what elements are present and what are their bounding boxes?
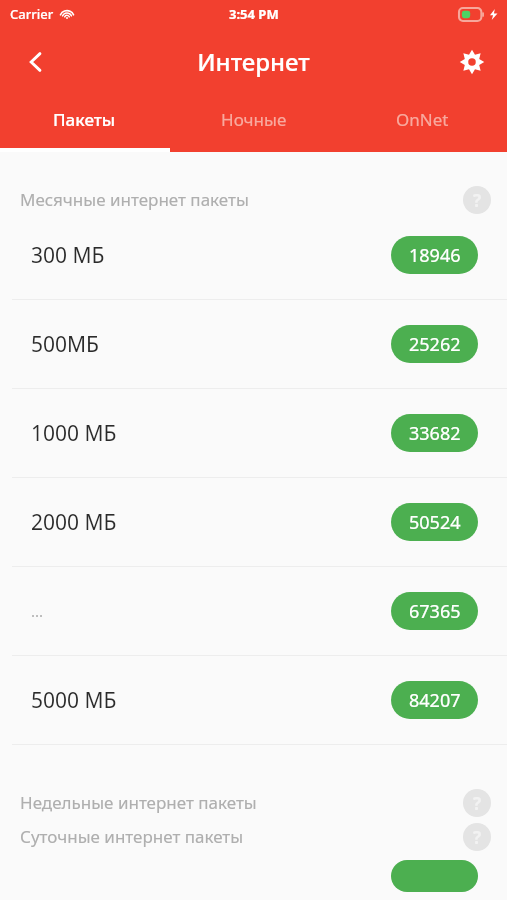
staticText: ? (473, 792, 482, 815)
staticText: 84207 (409, 688, 461, 713)
staticText: 5000 МБ (31, 686, 117, 715)
other: Help (463, 823, 491, 851)
staticText: 33682 (409, 421, 461, 446)
staticText: Месячные интернет пакеты (20, 188, 249, 211)
staticText: 3:54 PM (229, 5, 279, 23)
button[interactable]: 67365 (391, 592, 478, 630)
button[interactable]: Ночные (169, 95, 338, 152)
button[interactable]: 5000 МБ (0, 656, 507, 744)
button[interactable]: OnNet (338, 95, 507, 152)
button[interactable]: 18946 (391, 236, 478, 274)
button[interactable]: Back (12, 38, 60, 86)
staticText: ? (473, 189, 482, 212)
button[interactable]: Месячные интернет пакеты (0, 152, 507, 211)
button[interactable] (391, 860, 478, 892)
button[interactable]: 50524 (391, 503, 478, 541)
button[interactable]: Settings (449, 39, 495, 85)
staticText: 500МБ (31, 330, 99, 359)
button[interactable]: 1000 МБ (0, 389, 507, 477)
button[interactable]: 33682 (391, 414, 478, 452)
staticText: ... (31, 601, 44, 621)
button[interactable]: Недельные интернет пакеты (0, 745, 507, 814)
button[interactable]: 300 МБ (0, 211, 507, 299)
staticText: Пакеты (53, 108, 116, 131)
staticText: Недельные интернет пакеты (20, 791, 257, 814)
other: Help (463, 789, 491, 817)
staticText: 2000 МБ (31, 508, 117, 537)
staticText: OnNet (396, 108, 449, 131)
other: Help (463, 186, 491, 214)
staticText: 50524 (409, 510, 461, 535)
button[interactable]: ... (0, 567, 507, 655)
button[interactable]: 2000 МБ (0, 478, 507, 566)
staticText: 18946 (409, 243, 461, 268)
staticText: ? (473, 826, 482, 849)
staticText: Суточные интернет пакеты (20, 825, 244, 848)
staticText: Carrier (10, 5, 54, 23)
staticText: Интернет (197, 45, 310, 78)
staticText: 67365 (409, 599, 461, 624)
button[interactable]: Пакеты (0, 95, 169, 152)
staticText: 300 МБ (31, 241, 105, 270)
button[interactable]: Суточные интернет пакеты (0, 814, 507, 848)
button[interactable]: 25262 (391, 325, 478, 363)
staticText: Ночные (221, 108, 287, 131)
staticText: 1000 МБ (31, 419, 117, 448)
button[interactable]: 84207 (391, 681, 478, 719)
staticText: 25262 (409, 332, 461, 357)
button[interactable]: 500МБ (0, 300, 507, 388)
